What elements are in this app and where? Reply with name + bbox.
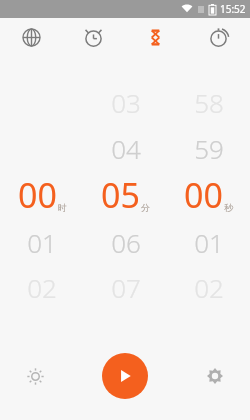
button[interactable]: 00	[0, 170, 84, 220]
button[interactable]: World clock	[0, 18, 62, 56]
button[interactable]: 01	[0, 220, 84, 265]
button[interactable]: 04	[84, 126, 167, 170]
staticText: 00	[18, 172, 57, 218]
staticText: 分	[141, 202, 150, 213]
button[interactable]: Timer	[124, 18, 187, 56]
staticText: 时	[58, 202, 67, 213]
button[interactable]: Stopwatch	[187, 18, 250, 56]
button[interactable]: 01	[167, 220, 250, 265]
staticText: 59	[194, 131, 224, 166]
staticText: 04	[111, 131, 141, 166]
staticText: 02	[27, 270, 57, 305]
button[interactable]: Alarm	[62, 18, 124, 56]
button[interactable]: 00	[167, 170, 250, 220]
button[interactable]: 58	[167, 78, 250, 126]
button[interactable]: 07	[84, 265, 167, 310]
staticText: 01	[27, 225, 57, 260]
button[interactable]: 02	[167, 265, 250, 310]
staticText: 秒	[224, 202, 233, 213]
button[interactable]: Settings	[200, 361, 230, 391]
button[interactable]: 59	[167, 126, 250, 170]
staticText: 01	[194, 225, 224, 260]
button[interactable]: 02	[0, 265, 84, 310]
staticText: 00	[184, 172, 223, 218]
staticText: 06	[111, 225, 141, 260]
button[interactable]: Start	[102, 353, 148, 399]
staticText: 05	[101, 172, 140, 218]
staticText: 02	[194, 270, 224, 305]
button[interactable]: 03	[84, 78, 167, 126]
button[interactable]: Brightness	[20, 361, 50, 391]
staticText: 15:52	[220, 2, 246, 16]
button[interactable]: 06	[84, 220, 167, 265]
button[interactable]: 05	[84, 170, 167, 220]
staticText: 03	[111, 85, 141, 120]
staticText: 58	[194, 85, 224, 120]
staticText: 07	[111, 270, 141, 305]
